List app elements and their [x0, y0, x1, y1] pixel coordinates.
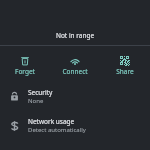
staticText: Not in range	[56, 31, 95, 40]
button[interactable]: Forget	[0, 56, 50, 76]
button[interactable]: Network usage	[0, 117, 150, 134]
button[interactable]: Connect	[50, 56, 100, 76]
staticText: Forget	[15, 67, 35, 76]
staticText: Detect automatically	[28, 126, 86, 134]
button[interactable]: Security	[0, 88, 150, 105]
staticText: Security	[28, 88, 53, 97]
other: Connect	[70, 56, 80, 66]
other: Forget	[21, 57, 29, 65]
other: Network usage	[10, 121, 20, 131]
button[interactable]: Share	[100, 56, 150, 76]
staticText: Network usage	[28, 117, 75, 126]
other: Security	[10, 92, 19, 101]
other: Share	[120, 56, 130, 66]
staticText: None	[28, 97, 44, 105]
staticText: Connect	[62, 67, 88, 76]
staticText: Share	[116, 67, 134, 76]
